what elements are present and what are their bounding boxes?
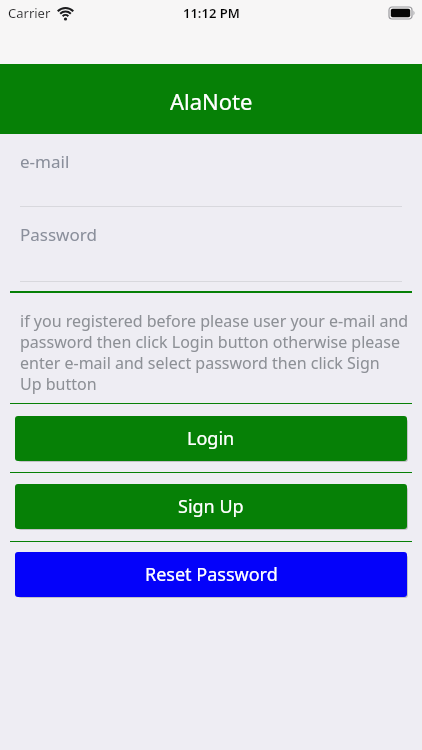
staticText: Login xyxy=(187,426,235,451)
button[interactable]: Sign Up xyxy=(15,484,407,529)
staticText: Carrier xyxy=(8,4,51,22)
staticText: Sign Up xyxy=(178,494,244,519)
staticText: AlaNote xyxy=(170,86,253,116)
staticText: if you registered before please user you… xyxy=(20,310,409,395)
button[interactable]: Reset Password xyxy=(15,552,407,597)
staticText: Reset Password xyxy=(145,562,278,587)
staticText: e-mail xyxy=(20,150,70,173)
button[interactable]: Login xyxy=(15,416,407,461)
staticText: 11:12 PM xyxy=(183,4,240,22)
staticText: Password xyxy=(20,223,97,246)
